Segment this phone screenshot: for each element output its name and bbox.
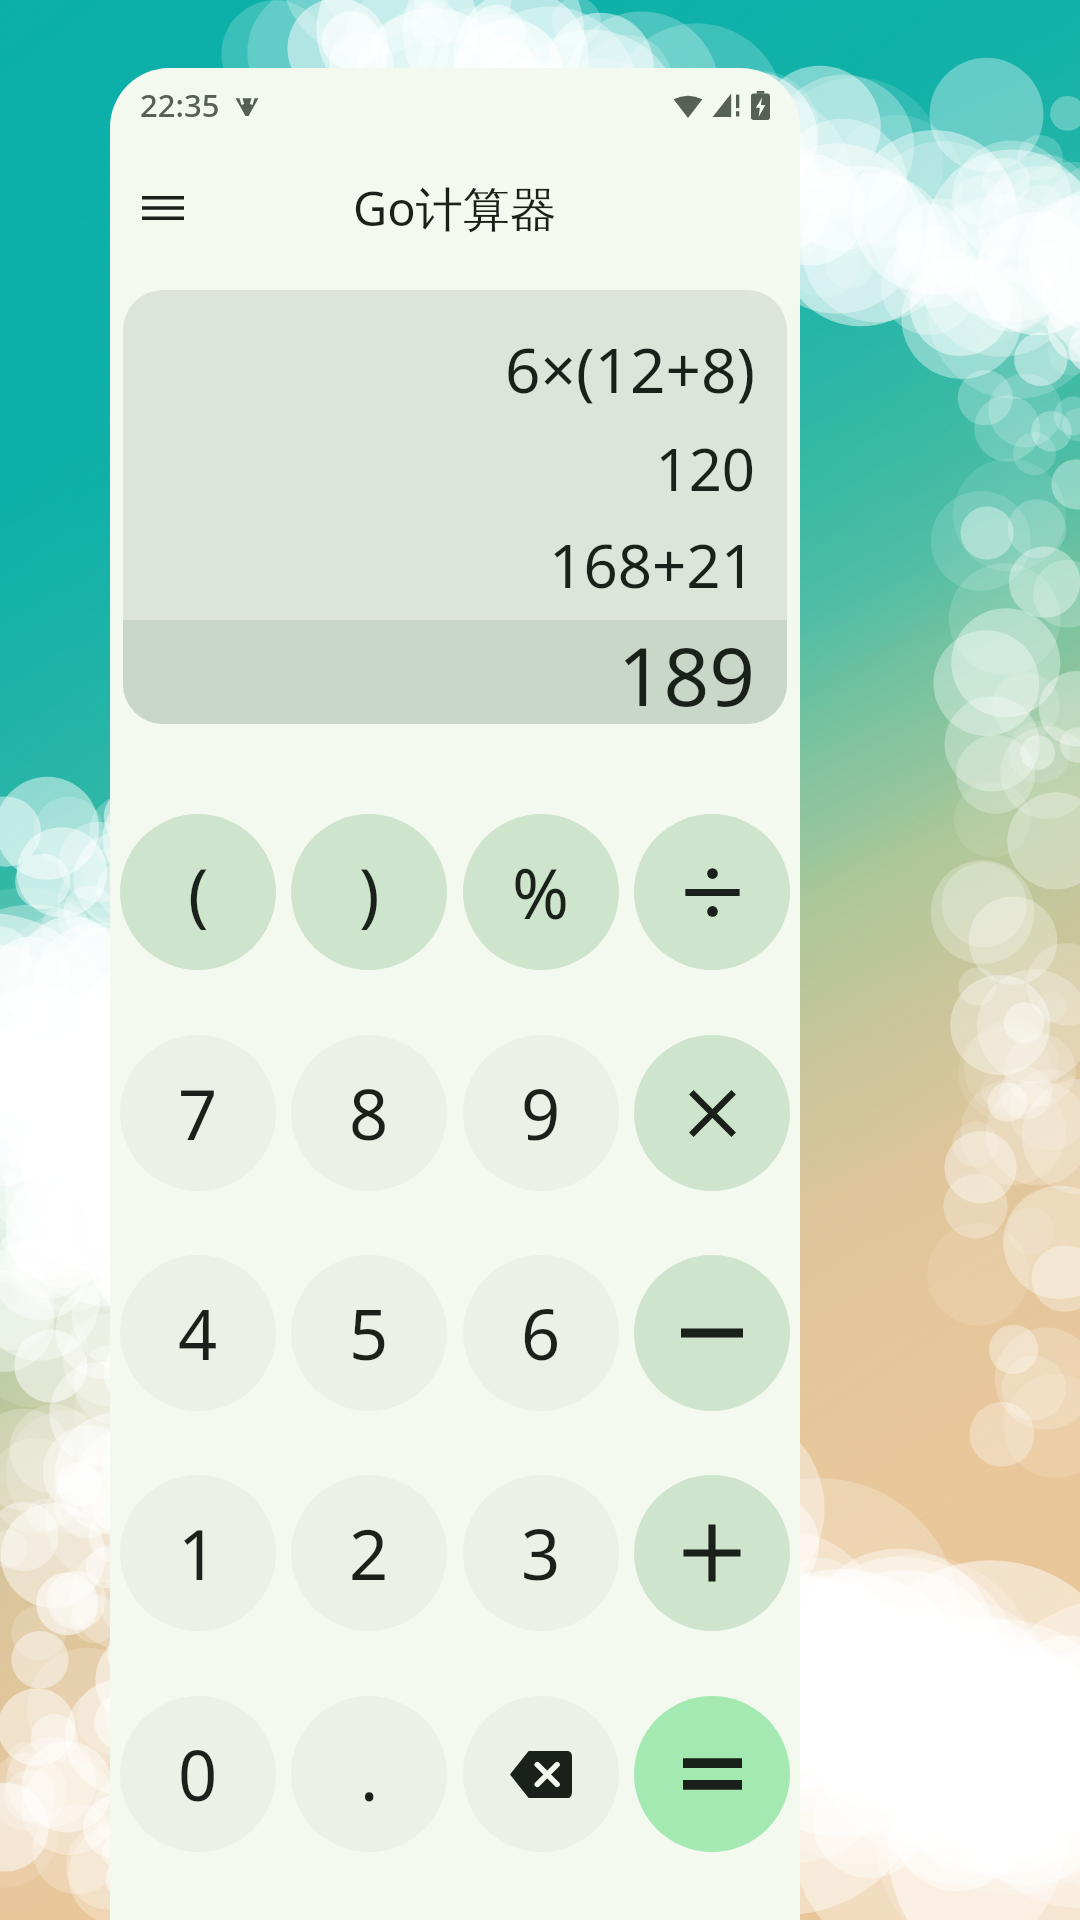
staticText: 22:35 (140, 84, 220, 126)
staticText: 2 (349, 1507, 389, 1600)
button[interactable]: 8 (291, 1035, 447, 1191)
staticText: 120 (655, 429, 755, 508)
staticText: 1 (178, 1507, 218, 1600)
button[interactable]: 0 (120, 1696, 276, 1852)
button[interactable]: 5 (291, 1255, 447, 1411)
staticText: 189 (617, 620, 755, 724)
button[interactable]: Add (634, 1475, 790, 1631)
staticText: 6×(12+8) (505, 327, 755, 411)
staticText: 4 (178, 1287, 218, 1380)
button[interactable]: Equals (634, 1696, 790, 1852)
button[interactable]: ) (291, 814, 447, 970)
button[interactable]: . (291, 1696, 447, 1852)
button[interactable]: 3 (463, 1475, 619, 1631)
button[interactable]: ( (120, 814, 276, 970)
button[interactable]: Backspace (463, 1696, 619, 1852)
staticText: 168+21 (549, 524, 755, 606)
staticText: 6 (521, 1287, 561, 1380)
button[interactable]: Menu (120, 165, 206, 251)
staticText: Go计算器 (353, 176, 557, 240)
button[interactable]: 9 (463, 1035, 619, 1191)
staticText: 0 (178, 1728, 218, 1821)
staticText: ) (359, 846, 380, 939)
button[interactable]: 4 (120, 1255, 276, 1411)
staticText: . (360, 1728, 379, 1821)
button[interactable]: Multiply (634, 1035, 790, 1191)
button[interactable]: 1 (120, 1475, 276, 1631)
staticText: % (512, 846, 570, 939)
button[interactable]: Divide (634, 814, 790, 970)
button[interactable]: 2 (291, 1475, 447, 1631)
staticText: 7 (178, 1067, 218, 1160)
staticText: 5 (349, 1287, 389, 1380)
button[interactable]: % (463, 814, 619, 970)
staticText: 3 (521, 1507, 561, 1600)
button[interactable]: 6 (463, 1255, 619, 1411)
button[interactable]: Subtract (634, 1255, 790, 1411)
staticText: ( (188, 846, 209, 939)
staticText: 8 (349, 1067, 389, 1160)
button[interactable]: 7 (120, 1035, 276, 1191)
staticText: 9 (521, 1067, 561, 1160)
